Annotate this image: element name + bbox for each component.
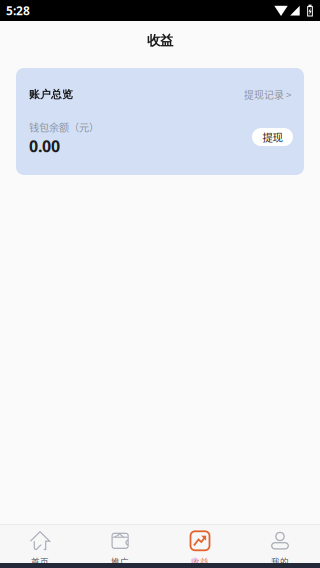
staticText: 提现记录 > [244, 87, 291, 102]
button[interactable]: 我的 [240, 525, 320, 563]
staticText: 收益 [147, 32, 173, 49]
staticText: 账户总览 [29, 88, 73, 101]
staticText: 我的 [271, 556, 289, 568]
button[interactable]: 提现记录 > [181, 87, 291, 101]
staticText: 0.00 [29, 135, 60, 157]
staticText: 5:28 [6, 2, 30, 18]
staticText: 推广 [111, 556, 129, 568]
staticText: 提现 [262, 129, 282, 145]
button[interactable]: 收益 [160, 525, 240, 563]
button[interactable]: 推广 [80, 525, 160, 563]
staticText: 钱包余额（元） [29, 120, 99, 134]
staticText: 收益 [191, 556, 209, 568]
button[interactable]: 首页 [0, 525, 80, 563]
staticText: 首页 [31, 556, 49, 568]
button[interactable]: 提现 [252, 128, 293, 146]
